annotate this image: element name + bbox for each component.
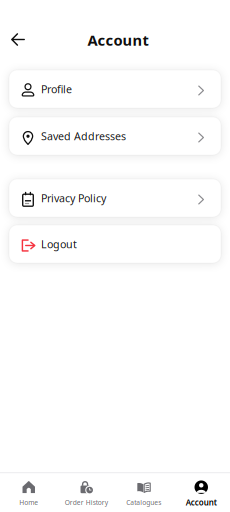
- button[interactable]: Logout: [9, 225, 221, 263]
- button[interactable]: Saved Addresses: [9, 117, 221, 155]
- button[interactable]: Home: [0, 480, 57, 507]
- button[interactable]: Profile: [9, 70, 221, 108]
- button[interactable]: Order History: [57, 480, 115, 507]
- button[interactable]: Account: [172, 479, 230, 508]
- staticText: Catalogues: [126, 498, 161, 507]
- staticText: Account: [186, 497, 217, 508]
- staticText: Saved Addresses: [41, 129, 126, 143]
- staticText: Home: [19, 498, 38, 507]
- staticText: Order History: [65, 498, 108, 507]
- staticText: Account: [87, 30, 148, 50]
- staticText: Profile: [41, 82, 72, 96]
- staticText: Logout: [41, 237, 77, 251]
- staticText: Privacy Policy: [41, 191, 106, 205]
- button[interactable]: Catalogues: [115, 480, 172, 507]
- button[interactable]: Back: [3, 26, 33, 54]
- button[interactable]: Privacy Policy: [9, 179, 221, 217]
